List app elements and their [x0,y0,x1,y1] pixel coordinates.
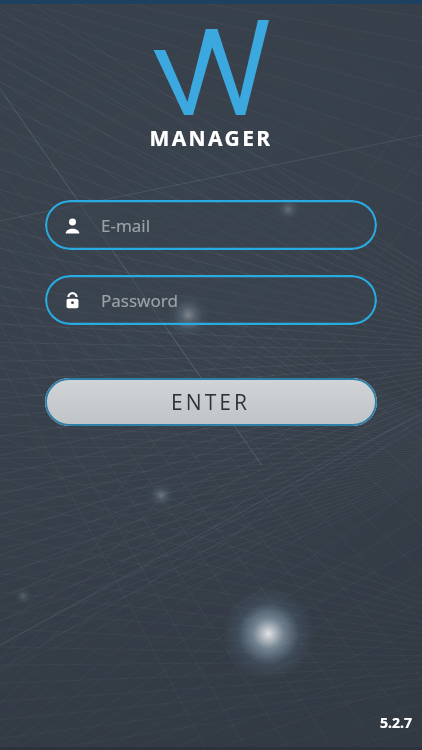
button[interactable]: Password [45,275,377,325]
staticText: 5.2.7 [380,713,412,732]
staticText: MANAGER [149,124,273,153]
staticText: Password [101,289,178,312]
other: Email [64,217,81,234]
button[interactable]: E-mail [45,200,377,250]
staticText: E-mail [101,214,151,237]
other: Password [64,292,81,309]
staticText: ENTER [171,388,251,417]
button[interactable]: ENTER [45,378,377,426]
